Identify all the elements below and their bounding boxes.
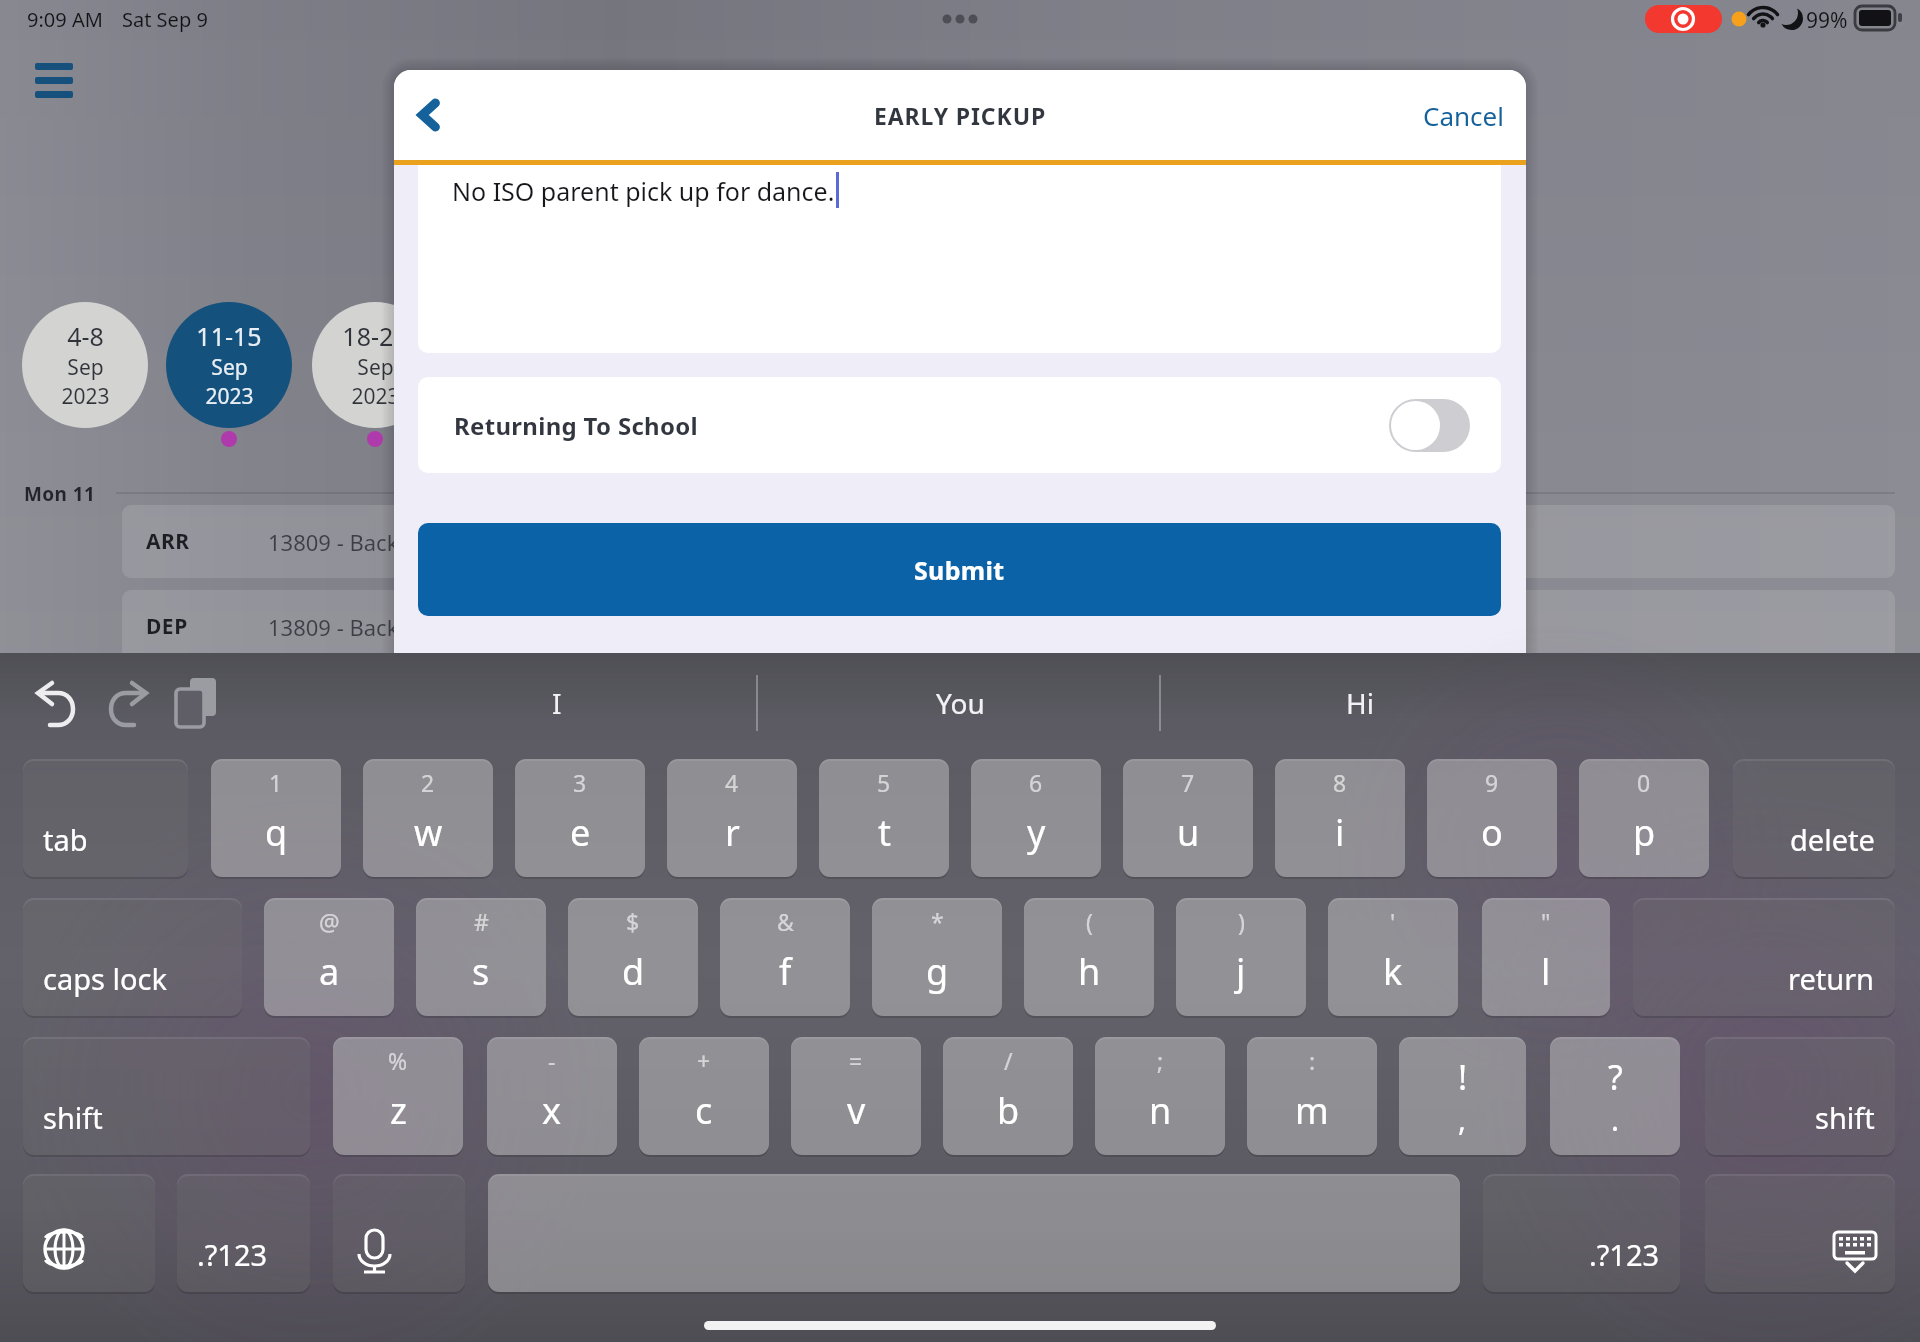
button[interactable]: Back: [396, 82, 462, 148]
staticText: x: [542, 1086, 562, 1135]
button[interactable]: 5: [819, 759, 949, 877]
button[interactable]: shift: [1705, 1037, 1895, 1155]
staticText: 3: [573, 767, 587, 798]
staticText: &: [777, 906, 794, 937]
button[interactable]: Cancel: [1423, 70, 1504, 160]
staticText: c: [695, 1086, 713, 1135]
button[interactable]: *: [872, 898, 1002, 1016]
staticText: ): [1238, 906, 1245, 937]
staticText: 4-8: [67, 319, 104, 353]
staticText: a: [319, 947, 340, 996]
button[interactable]: 18-22: [312, 302, 438, 428]
button[interactable]: 4: [667, 759, 797, 877]
button[interactable]: ': [1328, 898, 1458, 1016]
button[interactable]: 8: [1275, 759, 1405, 877]
button[interactable]: %: [333, 1037, 463, 1155]
button[interactable]: Menu: [28, 55, 80, 107]
button[interactable]: @: [264, 898, 394, 1016]
staticText: ': [1390, 906, 1396, 937]
button[interactable]: 6: [971, 759, 1101, 877]
staticText: .: [1611, 1099, 1620, 1140]
button[interactable]: Paste: [170, 669, 228, 727]
staticText: 2: [421, 767, 435, 798]
staticText: Hi: [1346, 684, 1374, 722]
button[interactable]: ;: [1095, 1037, 1225, 1155]
staticText: r: [725, 808, 740, 857]
button[interactable]: .?123: [1483, 1174, 1680, 1292]
button[interactable]: .?123: [177, 1174, 310, 1292]
button[interactable]: caps lock: [23, 898, 242, 1016]
button[interactable]: ": [1482, 898, 1610, 1016]
button[interactable]: Dictate: [333, 1174, 465, 1292]
staticText: ;: [1157, 1045, 1164, 1076]
staticText: i: [1335, 808, 1345, 857]
staticText: delete: [1790, 820, 1875, 859]
staticText: Returning To School: [454, 409, 699, 442]
button[interactable]: tab: [23, 759, 188, 877]
staticText: I: [552, 684, 562, 722]
button[interactable]: 2: [363, 759, 493, 877]
button[interactable]: You: [800, 673, 1120, 733]
button[interactable]: #: [416, 898, 546, 1016]
staticText: 2023: [61, 382, 110, 411]
button[interactable]: =: [791, 1037, 921, 1155]
button[interactable]: return: [1633, 898, 1895, 1016]
button[interactable]: 4-8: [22, 302, 148, 428]
button[interactable]: Undo: [28, 675, 84, 731]
staticText: Sat Sep 9: [122, 6, 208, 33]
staticText: Mon 11: [24, 481, 96, 507]
staticText: 9: [1485, 767, 1499, 798]
staticText: u: [1177, 808, 1200, 857]
button[interactable]: -: [487, 1037, 617, 1155]
staticText: .?123: [1589, 1235, 1660, 1274]
staticText: p: [1633, 808, 1656, 857]
staticText: +: [697, 1045, 711, 1076]
button[interactable]: Redo: [100, 675, 156, 731]
button[interactable]: &: [720, 898, 850, 1016]
button[interactable]: $: [568, 898, 698, 1016]
button[interactable]: 11-15: [166, 302, 292, 428]
button[interactable]: Change keyboard: [23, 1174, 155, 1292]
button[interactable]: ARR: [122, 505, 1895, 578]
button[interactable]: 0: [1579, 759, 1709, 877]
button[interactable]: DEP: [122, 590, 1895, 663]
staticText: /: [1004, 1045, 1013, 1076]
button[interactable]: (: [1024, 898, 1154, 1016]
button[interactable]: ): [1176, 898, 1306, 1016]
button[interactable]: +: [639, 1037, 769, 1155]
staticText: 4: [725, 767, 739, 798]
button[interactable]: 1: [211, 759, 341, 877]
staticText: 1: [269, 767, 283, 798]
staticText: 99%: [1806, 6, 1848, 35]
staticText: EARLY PICKUP: [874, 100, 1047, 131]
button[interactable]: !: [1399, 1037, 1526, 1155]
staticText: k: [1383, 947, 1403, 996]
button[interactable]: shift: [23, 1037, 310, 1155]
button[interactable]: 7: [1123, 759, 1253, 877]
staticText: No ISO parent pick up for dance.: [452, 174, 835, 208]
button[interactable]: Returning To School: [1389, 399, 1470, 452]
staticText: ": [1541, 906, 1551, 937]
button[interactable]: /: [943, 1037, 1073, 1155]
button[interactable]: Hide keyboard: [1705, 1174, 1895, 1292]
staticText: 13809 - Back: [268, 612, 399, 642]
staticText: ?: [1608, 1054, 1623, 1100]
staticText: =: [849, 1045, 863, 1076]
button[interactable]: ?: [1550, 1037, 1680, 1155]
staticText: o: [1481, 808, 1503, 857]
staticText: g: [926, 947, 949, 996]
button[interactable]: 9: [1427, 759, 1557, 877]
button[interactable]: delete: [1733, 759, 1895, 877]
button[interactable]: :: [1247, 1037, 1377, 1155]
staticText: *: [931, 906, 944, 937]
staticText: s: [472, 947, 490, 996]
button[interactable]: Hi: [1200, 673, 1520, 733]
staticText: tab: [43, 820, 88, 859]
button[interactable]: 3: [515, 759, 645, 877]
button[interactable]: I: [397, 673, 717, 733]
staticText: 2023: [351, 382, 400, 411]
button[interactable]: No ISO parent pick up for dance.: [418, 165, 1501, 353]
staticText: 5: [877, 767, 891, 798]
button[interactable]: Submit: [418, 523, 1501, 616]
